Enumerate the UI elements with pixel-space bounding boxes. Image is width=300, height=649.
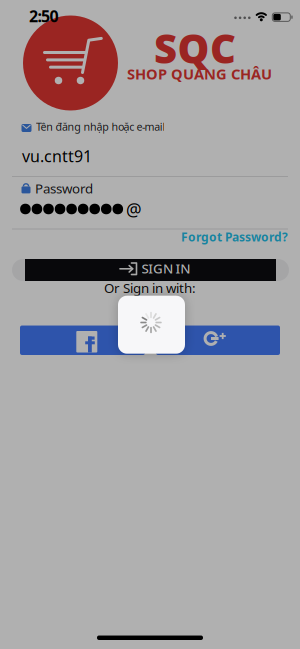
staticText: Or Sign in with:	[104, 279, 196, 297]
staticText: @	[126, 198, 142, 221]
staticText: Tên đăng nhập hoặc e-mail	[36, 119, 165, 134]
staticText: Password	[35, 179, 93, 197]
staticText: vu.cntt91	[22, 145, 92, 167]
staticText: 2:50	[29, 5, 58, 27]
staticText: SIGN IN	[141, 259, 190, 277]
staticText: SHOP QUẢNG CHÂU	[127, 64, 272, 83]
staticText: SQC	[154, 21, 236, 75]
staticText: Forgot Password?	[181, 229, 288, 245]
